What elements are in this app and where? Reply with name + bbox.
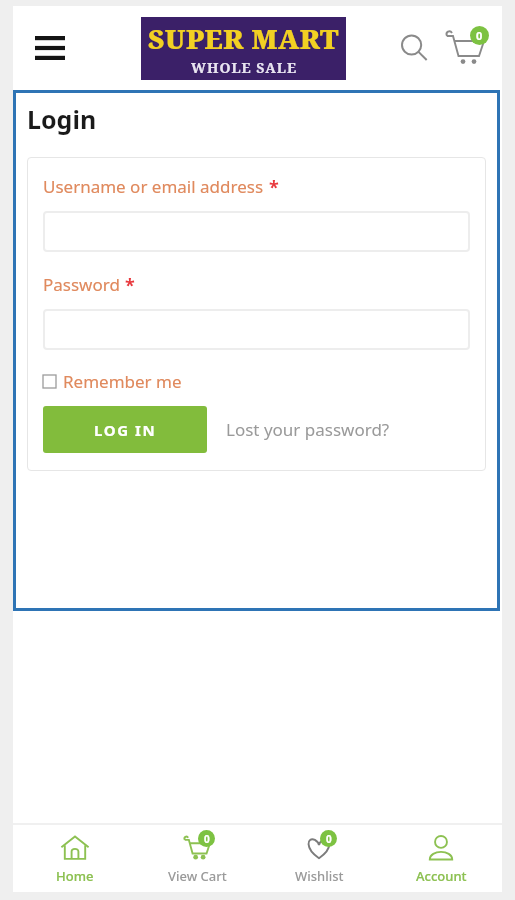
button[interactable]: Search	[390, 24, 438, 72]
staticText: LOG IN	[94, 420, 157, 440]
staticText: Lost your password?	[226, 418, 390, 441]
button[interactable]: LOG IN	[43, 406, 207, 453]
staticText: WHOLE SALE	[191, 58, 298, 77]
button[interactable]: SUPER MART	[141, 17, 346, 80]
staticText: View Cart	[168, 867, 227, 885]
button[interactable]	[43, 309, 470, 350]
staticText: Password	[43, 273, 120, 296]
button[interactable]	[43, 211, 470, 252]
button[interactable]: 0	[136, 824, 258, 892]
staticText: 0	[326, 832, 332, 846]
button[interactable]: Account	[380, 824, 502, 892]
staticText: Remember me	[63, 370, 182, 393]
staticText: Login	[27, 102, 97, 136]
button[interactable]: Remember me	[43, 370, 182, 393]
button[interactable]: Cart	[440, 23, 490, 73]
staticText: Wishlist	[295, 867, 344, 885]
staticText: 0	[204, 832, 210, 846]
staticText: *	[125, 273, 135, 298]
button[interactable]: Lost your password?	[226, 418, 390, 441]
staticText: Username or email address	[43, 175, 264, 198]
staticText: Account	[416, 867, 467, 885]
button[interactable]: 0	[258, 824, 380, 892]
staticText: Home	[56, 867, 94, 885]
staticText: *	[269, 175, 279, 200]
button[interactable]: Home	[13, 824, 136, 892]
button[interactable]: Menu	[27, 25, 73, 71]
staticText: 0	[476, 28, 483, 43]
staticText: SUPER MART	[148, 20, 340, 57]
